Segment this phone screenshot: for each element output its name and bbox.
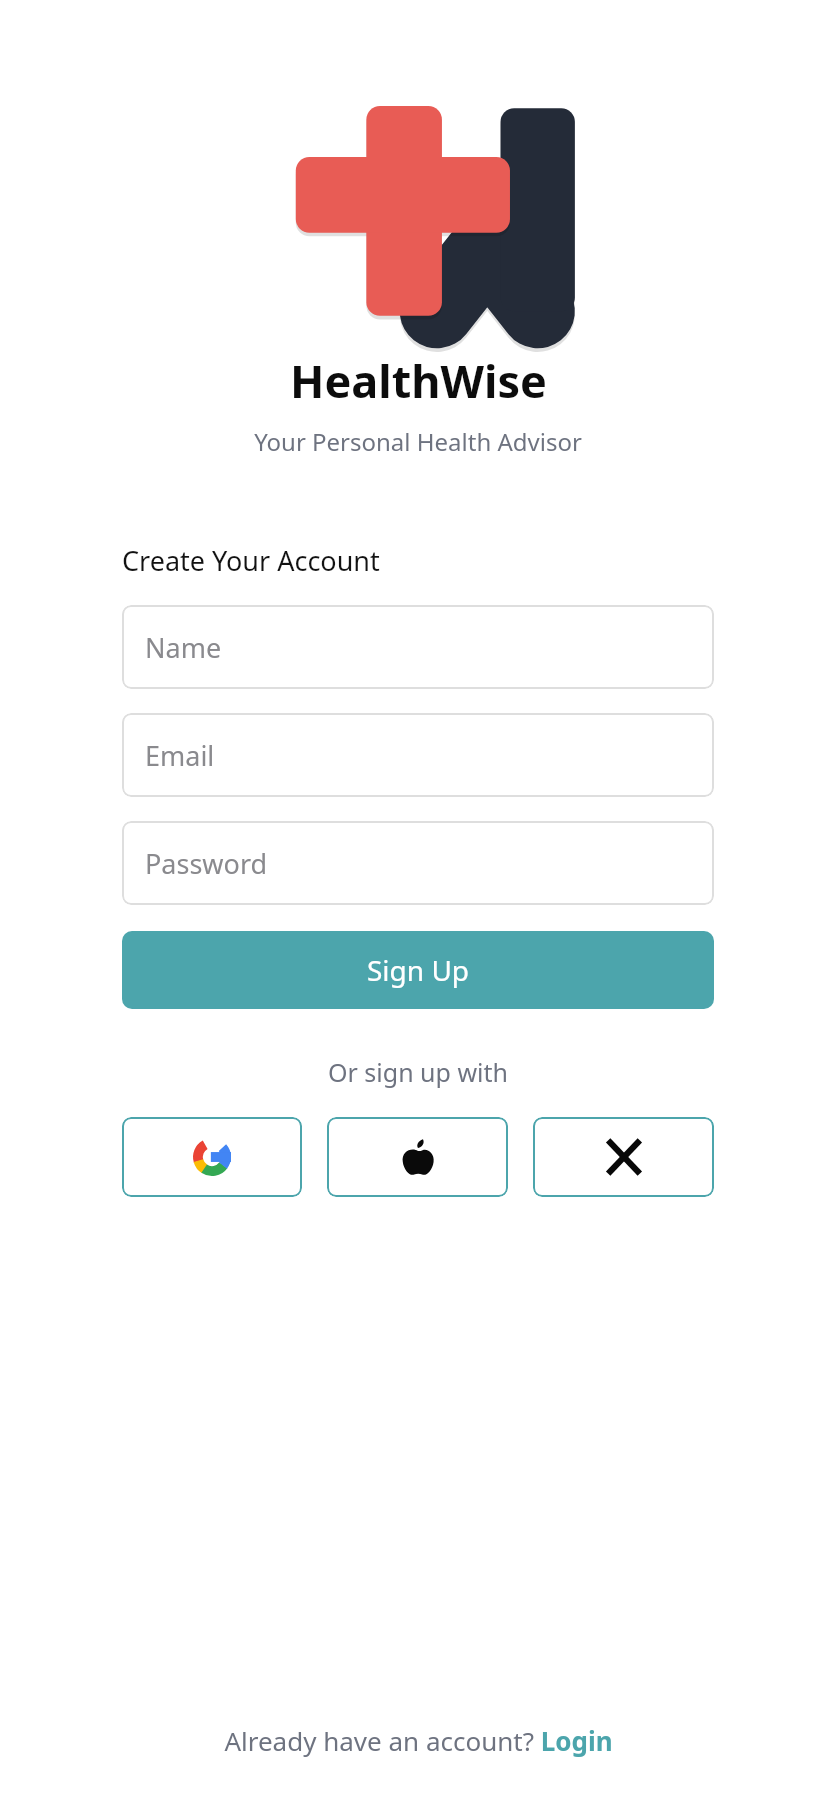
button[interactable]: Sign up with Google: [122, 1117, 302, 1197]
staticText: Already have an account? Login: [224, 1723, 613, 1758]
staticText: Or sign up with: [122, 1055, 714, 1089]
staticText: Name: [145, 629, 222, 666]
staticText: Create Your Account: [122, 542, 380, 579]
button[interactable]: Password: [122, 821, 714, 905]
staticText: Password: [145, 845, 268, 882]
staticText: HealthWise: [290, 350, 547, 411]
button[interactable]: Sign up with Apple: [327, 1117, 508, 1197]
button[interactable]: Email: [122, 713, 714, 797]
button[interactable]: Name: [122, 605, 714, 689]
staticText: Your Personal Health Advisor: [254, 425, 582, 458]
staticText: Sign Up: [367, 951, 470, 989]
button[interactable]: Already have an account? Login: [200, 1713, 637, 1768]
button[interactable]: Sign Up: [122, 931, 714, 1009]
staticText: Email: [145, 737, 215, 774]
button[interactable]: Sign up with X: [533, 1117, 714, 1197]
